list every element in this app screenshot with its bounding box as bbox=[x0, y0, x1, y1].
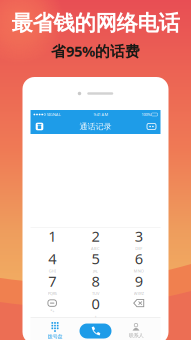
staticText: 通话记录 bbox=[79, 122, 111, 131]
staticText: 9 bbox=[135, 271, 143, 291]
staticText: *+ bbox=[50, 308, 54, 313]
button[interactable]: 6 bbox=[117, 250, 160, 272]
button[interactable]: 4 bbox=[30, 250, 74, 272]
button[interactable]: 5 bbox=[74, 250, 117, 272]
staticText: 100% bbox=[141, 112, 150, 117]
button[interactable]: Clear call log bbox=[33, 120, 45, 133]
staticText: DEF bbox=[135, 246, 142, 251]
staticText: 3 bbox=[135, 226, 143, 246]
staticText: 6 bbox=[135, 249, 143, 268]
button[interactable]: 9 bbox=[117, 272, 160, 295]
button[interactable]: Delete bbox=[117, 295, 160, 317]
button[interactable]: 拨号盘 bbox=[30, 322, 79, 340]
staticText: 联系人 bbox=[128, 332, 143, 339]
staticText: TUV bbox=[92, 291, 99, 296]
staticText: 4 bbox=[48, 249, 56, 268]
staticText: 9:41 AM bbox=[94, 112, 109, 117]
staticText: WXYZ bbox=[134, 291, 144, 296]
button[interactable]: 0 bbox=[74, 295, 117, 317]
button[interactable]: Star bbox=[30, 295, 74, 317]
staticText: ABC bbox=[91, 246, 100, 251]
button[interactable]: 2 bbox=[74, 227, 117, 250]
staticText: 8 bbox=[91, 271, 99, 291]
button[interactable]: 1 bbox=[30, 227, 74, 250]
staticText: 最省钱的网络电话 bbox=[11, 10, 179, 36]
staticText: 7 bbox=[48, 271, 56, 291]
button[interactable]: Call bbox=[79, 323, 111, 338]
button[interactable]: Recordings bbox=[145, 120, 157, 133]
staticText: 5 bbox=[91, 249, 99, 268]
button[interactable]: 3 bbox=[117, 227, 160, 250]
staticText: 拨号盘 bbox=[47, 333, 62, 340]
staticText: 省95%的话费 bbox=[51, 41, 140, 61]
staticText: JKL bbox=[93, 268, 98, 274]
staticText: PQRS bbox=[48, 291, 57, 296]
staticText: 0 bbox=[91, 294, 99, 313]
staticText: 2 bbox=[91, 226, 99, 246]
button[interactable]: 联系人 bbox=[111, 323, 160, 339]
staticText: SIGNAL bbox=[46, 112, 61, 117]
staticText: MNO bbox=[134, 268, 144, 274]
staticText: + bbox=[94, 313, 96, 319]
button[interactable]: 7 bbox=[30, 272, 74, 295]
staticText: 1 bbox=[48, 226, 56, 246]
button[interactable]: 8 bbox=[74, 272, 117, 295]
staticText: GHI bbox=[49, 268, 56, 274]
